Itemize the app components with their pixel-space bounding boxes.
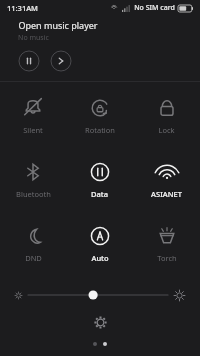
button[interactable]: Next track	[50, 50, 72, 72]
staticText: ASIANET	[151, 189, 182, 199]
staticText: No music	[18, 33, 49, 43]
button[interactable]: Open music player	[0, 16, 200, 81]
button[interactable]: Settings	[87, 309, 113, 335]
staticText: Lock	[158, 125, 175, 135]
staticText: Bluetooth	[16, 189, 51, 199]
staticText: Silent	[23, 125, 43, 135]
button[interactable]: Rotation	[66, 93, 133, 137]
button[interactable]: Pause	[18, 50, 40, 72]
button[interactable]: Silent	[0, 93, 66, 137]
staticText: No SIM card	[134, 3, 175, 13]
staticText: Rotation	[85, 125, 115, 135]
button[interactable]	[0, 284, 200, 306]
button[interactable]: Lock	[133, 93, 200, 137]
staticText: 11:31AM	[7, 3, 38, 13]
staticText: Auto	[91, 253, 109, 263]
button[interactable]: Data	[66, 157, 133, 201]
button[interactable]: Torch	[133, 221, 200, 265]
staticText: Open music player	[18, 19, 98, 31]
button[interactable]: ASIANET	[133, 157, 200, 201]
button[interactable]: Auto	[66, 221, 133, 265]
button[interactable]: Bluetooth	[0, 157, 66, 201]
staticText: Torch	[157, 253, 177, 263]
staticText: DND	[25, 253, 42, 263]
button[interactable]: DND	[0, 221, 66, 265]
staticText: Data	[91, 189, 108, 199]
